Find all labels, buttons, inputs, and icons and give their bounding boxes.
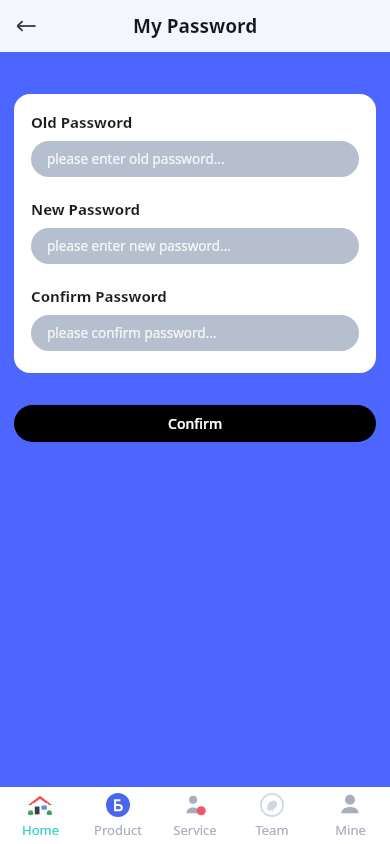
button[interactable]: Team (235, 788, 309, 843)
button[interactable]: please confirm password... (31, 315, 359, 351)
staticText: please enter old password... (47, 150, 225, 168)
staticText: please enter new password... (47, 237, 231, 255)
button[interactable]: Home (3, 788, 77, 843)
button[interactable]: please enter new password... (31, 228, 359, 264)
staticText: Service (173, 821, 217, 839)
button[interactable]: Mine (313, 788, 387, 843)
button[interactable]: Confirm (14, 405, 376, 442)
staticText: Mine (335, 821, 366, 839)
staticText: Home (22, 821, 59, 839)
staticText: please confirm password... (47, 324, 217, 342)
button[interactable]: Product (81, 788, 155, 843)
staticText: New Password (31, 199, 141, 219)
staticText: Confirm Password (31, 286, 167, 306)
button[interactable]: please enter old password... (31, 141, 359, 177)
button[interactable]: Back (6, 6, 46, 46)
staticText: Confirm (168, 414, 223, 433)
staticText: Old Password (31, 112, 133, 132)
button[interactable]: Service (158, 788, 232, 843)
staticText: My Password (133, 13, 258, 39)
staticText: Product (94, 821, 142, 839)
staticText: Team (255, 821, 289, 839)
